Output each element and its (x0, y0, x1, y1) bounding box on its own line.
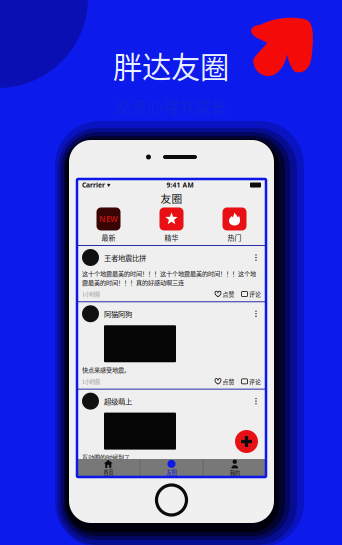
button[interactable]: 发布动态 (235, 430, 258, 453)
staticText: 评论 (249, 290, 261, 298)
staticText: 王者地震比拼 (104, 252, 146, 263)
button[interactable]: 热门 (203, 207, 266, 242)
staticText: 1小时前 (82, 377, 100, 385)
staticText: 互动圈的时候到了 (82, 453, 130, 461)
staticText: 9:41 AM (166, 181, 193, 189)
button[interactable]: 更多 (251, 251, 261, 263)
button[interactable]: 友圈 (140, 460, 203, 476)
button[interactable]: 评论 (241, 377, 261, 386)
button[interactable]: 点赞 (215, 464, 234, 473)
staticText: 首页 (103, 468, 113, 476)
staticText: 点赞 (222, 464, 234, 473)
staticText: 点赞 (222, 377, 234, 386)
button[interactable]: 精华 (140, 207, 203, 242)
staticText: 最新 (101, 232, 115, 242)
staticText: 交流心得共成长 (115, 94, 227, 118)
staticText: 这十个地震最美的时间！！！这十个地震最美的时间！！！这个地震最美的时间！！！真的… (82, 269, 256, 287)
staticText: ▾ (105, 181, 110, 189)
staticText: 友圈 (166, 468, 176, 476)
button[interactable]: 点赞 (215, 377, 234, 386)
button[interactable]: 评论 (241, 290, 261, 298)
staticText: 我的 (230, 469, 240, 477)
staticText: 友圈 (160, 190, 182, 206)
staticText: 快点来感受地震。 (82, 365, 130, 374)
staticText: 胖达友圈 (113, 44, 229, 86)
staticText: 点赞 (222, 290, 234, 298)
staticText: 超级萌上 (104, 396, 132, 406)
staticText: 1小时前 (82, 290, 100, 298)
staticText: Carrier (82, 181, 105, 189)
button[interactable]: 我的 (203, 459, 266, 477)
staticText: 精华 (164, 232, 178, 242)
button[interactable]: NEW (77, 207, 140, 242)
staticText: 热门 (227, 232, 241, 242)
staticText: 评论 (249, 377, 261, 386)
staticText: NEW (99, 214, 118, 224)
button[interactable]: 更多 (251, 308, 261, 320)
button[interactable]: 更多 (251, 395, 261, 407)
button[interactable]: 首页 (77, 460, 139, 476)
button[interactable]: 点赞 (215, 290, 234, 298)
staticText: 阿猫阿狗 (104, 308, 132, 319)
